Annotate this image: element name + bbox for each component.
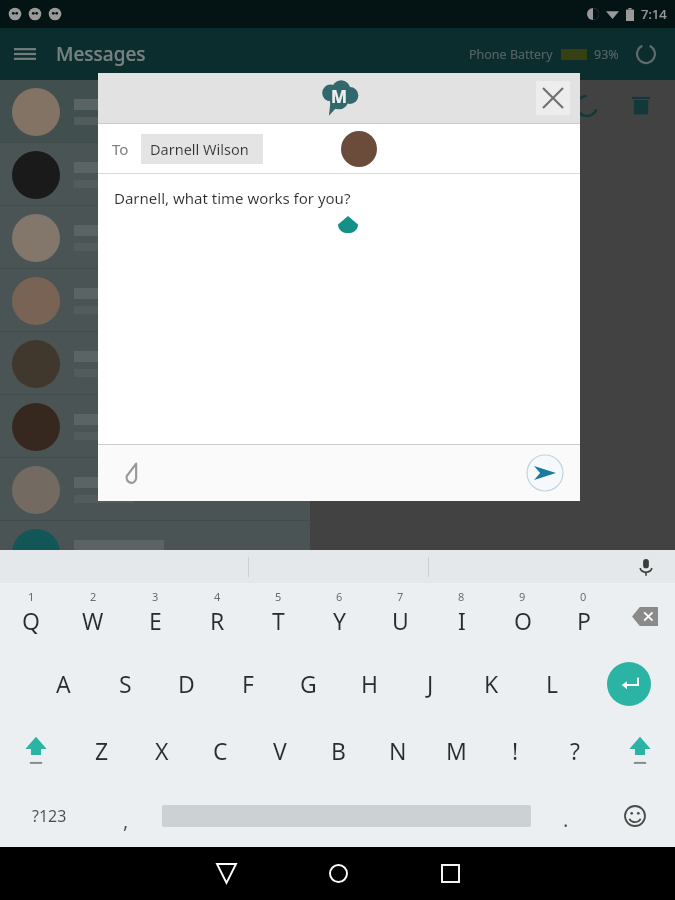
staticText: U	[392, 605, 409, 636]
staticText: 7	[397, 589, 404, 604]
button[interactable]: K	[461, 650, 522, 717]
button[interactable]: 5	[248, 583, 309, 650]
staticText: 3	[152, 589, 159, 604]
button[interactable]: L	[522, 650, 583, 717]
staticText: Darnell Wilson	[150, 139, 249, 159]
button[interactable]: Backspace	[614, 583, 675, 650]
button[interactable]: Enter	[583, 650, 675, 717]
button[interactable]: Space	[154, 784, 538, 847]
button[interactable]: 7	[370, 583, 431, 650]
button[interactable]: Voice input	[631, 552, 661, 582]
staticText: X	[155, 735, 169, 766]
button[interactable]: Recents	[415, 847, 485, 900]
staticText: B	[331, 735, 346, 766]
button[interactable]	[0, 332, 310, 395]
button[interactable]: Send	[526, 454, 564, 492]
staticText: N	[389, 735, 407, 766]
staticText: 93%	[594, 46, 619, 63]
button[interactable]: 6	[309, 583, 370, 650]
staticText: W	[82, 605, 104, 636]
staticText: 8	[458, 589, 465, 604]
staticText: M	[331, 85, 348, 108]
staticText: E	[149, 605, 162, 636]
staticText: 5	[275, 589, 282, 604]
staticText: 0	[580, 589, 587, 604]
button[interactable]: D	[156, 650, 217, 717]
staticText: J	[427, 668, 434, 699]
button[interactable]	[0, 395, 310, 458]
button[interactable]: Emoji	[594, 784, 675, 847]
button[interactable]: C	[191, 717, 250, 784]
staticText: H	[361, 668, 379, 699]
staticText: O	[514, 605, 532, 636]
staticText: P	[577, 605, 591, 636]
button[interactable]	[0, 458, 310, 521]
button[interactable]: !	[486, 717, 545, 784]
staticText: M	[446, 735, 467, 766]
button[interactable]	[0, 80, 310, 143]
staticText: ,	[123, 807, 129, 834]
staticText: L	[546, 668, 559, 699]
staticText: F	[242, 668, 254, 699]
staticText: 1	[28, 589, 35, 604]
button[interactable]: 0	[553, 583, 614, 650]
button[interactable]: .	[538, 784, 594, 847]
button[interactable]: Home	[303, 847, 373, 900]
button[interactable]: 4	[186, 583, 248, 650]
button[interactable]: 9	[492, 583, 553, 650]
staticText: Z	[95, 735, 109, 766]
button[interactable]: Shift	[604, 717, 675, 784]
button[interactable]: J	[400, 650, 461, 717]
button[interactable]: Darnell Wilson	[141, 134, 263, 164]
staticText: ?	[570, 735, 580, 766]
button[interactable]	[0, 521, 310, 584]
button[interactable]: H	[339, 650, 400, 717]
staticText: .	[563, 806, 569, 833]
button[interactable]: 1	[0, 583, 62, 650]
button[interactable]: Attach	[112, 453, 152, 493]
button[interactable]: Z	[72, 717, 132, 784]
staticText: C	[213, 735, 228, 766]
staticText: 7:14	[641, 5, 667, 23]
button[interactable]: 3	[124, 583, 186, 650]
button[interactable]	[0, 143, 310, 206]
staticText: R	[210, 605, 225, 636]
button[interactable]: S	[94, 650, 156, 717]
button[interactable]: V	[250, 717, 309, 784]
staticText: 6	[336, 589, 343, 604]
button[interactable]: B	[309, 717, 368, 784]
button[interactable]: X	[132, 717, 191, 784]
staticText: To	[112, 139, 129, 159]
button[interactable]: F	[217, 650, 278, 717]
button[interactable]: N	[368, 717, 427, 784]
staticText: Y	[333, 605, 347, 636]
button[interactable]: Close	[536, 81, 570, 115]
button[interactable]: ,	[98, 784, 154, 847]
button[interactable]	[0, 206, 310, 269]
button[interactable]: G	[278, 650, 339, 717]
staticText: !	[512, 735, 519, 766]
staticText: G	[300, 668, 317, 699]
staticText: 2	[90, 589, 97, 604]
button[interactable]: A	[32, 650, 94, 717]
staticText: A	[56, 668, 71, 699]
button[interactable]: 2	[62, 583, 124, 650]
button[interactable]: ?	[545, 717, 604, 784]
button[interactable]: Shift	[0, 717, 72, 784]
button[interactable]: 8	[431, 583, 492, 650]
staticText: ?123	[32, 805, 67, 827]
staticText: Messages	[56, 41, 146, 67]
button[interactable]: Back	[191, 847, 261, 900]
button[interactable]	[0, 269, 310, 332]
staticText: Phone Battery	[469, 46, 553, 63]
staticText: I	[458, 605, 466, 636]
button[interactable]: ?123	[0, 784, 98, 847]
staticText: V	[273, 735, 287, 766]
staticText: D	[178, 668, 195, 699]
staticText: 4	[214, 589, 221, 604]
button[interactable]: M	[427, 717, 486, 784]
staticText: Darnell, what time works for you?	[114, 188, 351, 208]
staticText: Q	[22, 605, 40, 636]
staticText: K	[484, 668, 499, 699]
button[interactable]: Darnell, what time works for you?	[98, 174, 580, 444]
